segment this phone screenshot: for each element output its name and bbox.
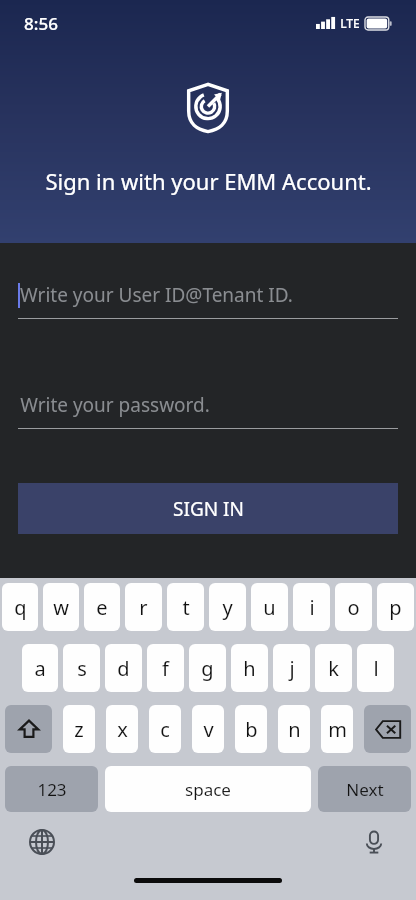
staticText: c bbox=[160, 716, 170, 743]
button[interactable]: Next bbox=[318, 766, 411, 812]
staticText: w bbox=[53, 594, 69, 621]
staticText: f bbox=[162, 655, 169, 682]
button[interactable]: Voice input bbox=[358, 826, 390, 858]
staticText: l bbox=[373, 655, 379, 682]
staticText: a bbox=[34, 655, 46, 682]
staticText: r bbox=[139, 594, 148, 621]
button[interactable]: SIGN IN bbox=[18, 483, 398, 534]
button[interactable]: Backspace bbox=[364, 705, 411, 753]
staticText: SIGN IN bbox=[173, 496, 244, 522]
button[interactable]: a bbox=[22, 644, 58, 692]
staticText: 8:56 bbox=[24, 12, 58, 35]
button[interactable]: space bbox=[105, 766, 311, 812]
staticText: 123 bbox=[37, 778, 67, 801]
staticText: u bbox=[263, 594, 276, 621]
staticText: m bbox=[328, 716, 347, 743]
button[interactable]: x bbox=[106, 705, 138, 753]
button[interactable]: w bbox=[43, 583, 79, 631]
button[interactable]: v bbox=[192, 705, 224, 753]
button[interactable]: j bbox=[273, 644, 310, 692]
button[interactable]: u bbox=[251, 583, 288, 631]
button[interactable]: Shift bbox=[5, 705, 52, 753]
staticText: h bbox=[243, 655, 256, 682]
button[interactable]: o bbox=[335, 583, 372, 631]
staticText: b bbox=[245, 716, 258, 743]
staticText: p bbox=[389, 594, 402, 621]
button[interactable]: t bbox=[167, 583, 204, 631]
staticText: q bbox=[14, 594, 27, 621]
button[interactable]: p bbox=[377, 583, 414, 631]
staticText: LTE bbox=[340, 15, 360, 31]
button[interactable]: Write your password. bbox=[18, 382, 398, 428]
button[interactable]: h bbox=[231, 644, 268, 692]
button[interactable]: Write your User ID@Tenant ID. bbox=[18, 272, 398, 318]
staticText: g bbox=[201, 655, 214, 682]
staticText: v bbox=[203, 716, 214, 743]
staticText: s bbox=[77, 655, 87, 682]
staticText: n bbox=[288, 716, 301, 743]
button[interactable]: e bbox=[84, 583, 120, 631]
button[interactable]: 123 bbox=[5, 766, 98, 812]
staticText: k bbox=[328, 655, 339, 682]
button[interactable]: d bbox=[105, 644, 142, 692]
staticText: t bbox=[182, 594, 190, 621]
staticText: d bbox=[117, 655, 130, 682]
button[interactable]: s bbox=[63, 644, 100, 692]
staticText: i bbox=[309, 594, 315, 621]
staticText: Write your User ID@Tenant ID. bbox=[20, 282, 293, 308]
button[interactable]: l bbox=[357, 644, 394, 692]
button[interactable]: y bbox=[209, 583, 246, 631]
button[interactable]: k bbox=[315, 644, 352, 692]
button[interactable]: b bbox=[235, 705, 267, 753]
button[interactable]: n bbox=[278, 705, 310, 753]
staticText: z bbox=[74, 716, 84, 743]
button[interactable]: f bbox=[147, 644, 184, 692]
staticText: e bbox=[96, 594, 108, 621]
staticText: space bbox=[185, 778, 231, 801]
staticText: j bbox=[289, 655, 295, 682]
staticText: y bbox=[222, 594, 233, 621]
staticText: Write your password. bbox=[20, 392, 210, 418]
staticText: x bbox=[117, 716, 128, 743]
button[interactable]: g bbox=[189, 644, 226, 692]
button[interactable]: Change keyboard bbox=[26, 826, 58, 858]
button[interactable]: i bbox=[293, 583, 330, 631]
button[interactable]: r bbox=[125, 583, 162, 631]
staticText: o bbox=[347, 594, 360, 621]
button[interactable]: c bbox=[149, 705, 181, 753]
staticText: Next bbox=[346, 778, 384, 801]
button[interactable]: z bbox=[63, 705, 95, 753]
button[interactable]: q bbox=[2, 583, 38, 631]
staticText: Sign in with your EMM Account. bbox=[45, 166, 372, 196]
button[interactable]: m bbox=[321, 705, 353, 753]
